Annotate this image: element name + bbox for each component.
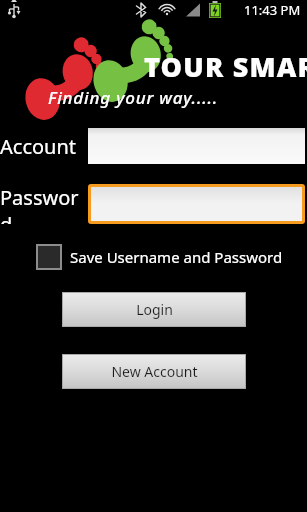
button[interactable] xyxy=(91,187,302,221)
button[interactable]: Login xyxy=(62,292,246,327)
staticText: Account xyxy=(0,133,88,160)
button[interactable]: New Account xyxy=(62,354,246,389)
button[interactable]: Save Username and Password xyxy=(36,244,307,270)
staticText: Password xyxy=(0,184,88,224)
staticText: TOUR SMART xyxy=(144,48,307,85)
staticText: Login xyxy=(136,300,173,319)
staticText: Finding your way..... xyxy=(48,86,219,109)
staticText: 11:43 PM xyxy=(244,1,301,19)
staticText: Save Username and Password xyxy=(70,247,283,267)
button[interactable] xyxy=(88,128,305,164)
staticText: New Account xyxy=(111,362,198,381)
